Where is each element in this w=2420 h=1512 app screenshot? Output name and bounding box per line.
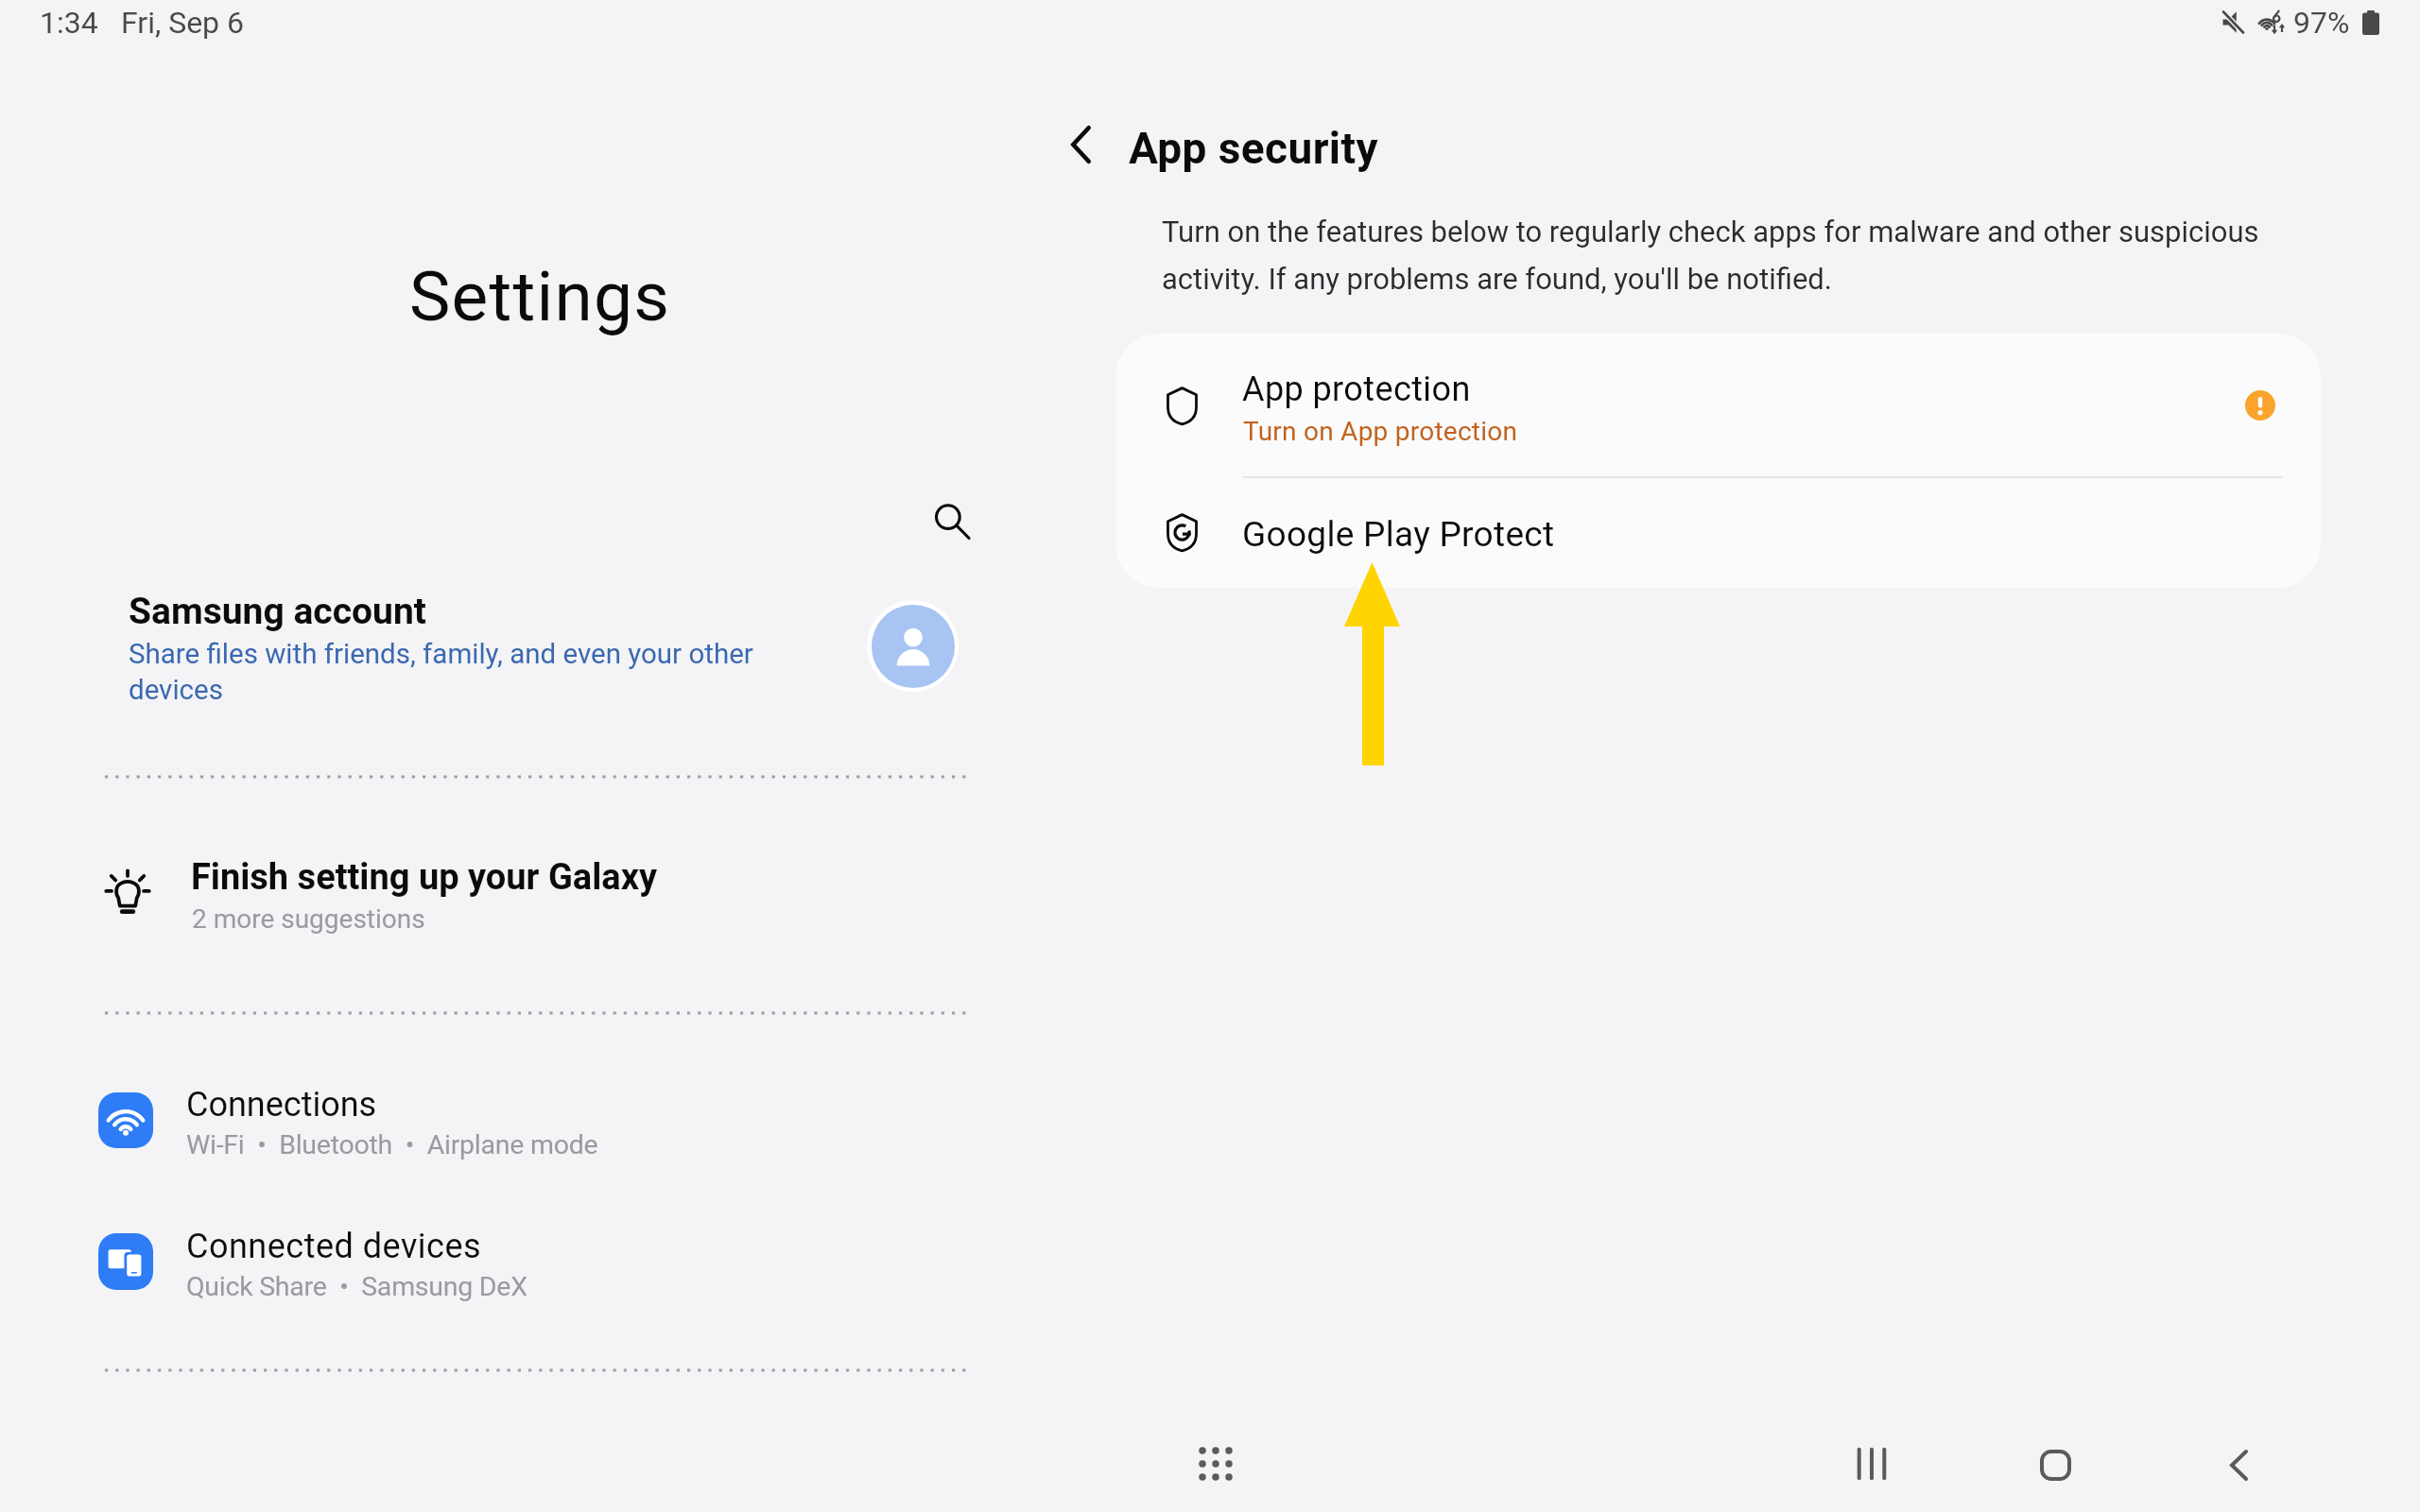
staticText: Finish setting up your Galaxy bbox=[191, 853, 658, 899]
staticText: Turn on the features below to regularly … bbox=[1162, 204, 2291, 299]
staticText: Google Play Protect bbox=[1242, 511, 1555, 555]
button[interactable]: Back bbox=[1041, 107, 1118, 182]
button[interactable]: Apps bbox=[1178, 1426, 1253, 1502]
staticText: Connected devices bbox=[186, 1224, 482, 1266]
staticText: App security bbox=[1129, 120, 1378, 175]
staticText: Turn on App protection bbox=[1243, 414, 1518, 447]
staticText: Fri, Sep 6 bbox=[121, 3, 244, 41]
button[interactable]: Home bbox=[2017, 1427, 2093, 1503]
button[interactable]: Connected devices bbox=[99, 1210, 969, 1323]
staticText: Wi-Fi • Bluetooth • Airplane mode bbox=[186, 1127, 598, 1161]
button[interactable]: Google Play Protect bbox=[1115, 461, 2321, 588]
staticText: Samsung account bbox=[129, 587, 426, 633]
button[interactable]: Connections bbox=[99, 1068, 969, 1181]
staticText: Connections bbox=[186, 1082, 377, 1125]
button[interactable]: App protection bbox=[1115, 334, 2321, 461]
button[interactable]: Search bbox=[909, 478, 994, 563]
staticText: 1:34 bbox=[40, 3, 98, 41]
staticText: Share files with friends, family, and ev… bbox=[129, 635, 764, 707]
staticText: Settings bbox=[409, 252, 671, 338]
staticText: Quick Share • Samsung DeX bbox=[186, 1269, 527, 1303]
staticText: 97% bbox=[2293, 3, 2350, 41]
button[interactable]: Recents bbox=[1834, 1426, 1910, 1502]
button[interactable]: Back bbox=[2201, 1427, 2276, 1503]
button[interactable]: Samsung account bbox=[99, 567, 846, 728]
staticText: App protection bbox=[1242, 367, 1471, 409]
button[interactable]: Profile bbox=[867, 600, 959, 692]
button[interactable]: Finish setting up your Galaxy bbox=[99, 832, 969, 954]
staticText: 2 more suggestions bbox=[192, 902, 425, 935]
